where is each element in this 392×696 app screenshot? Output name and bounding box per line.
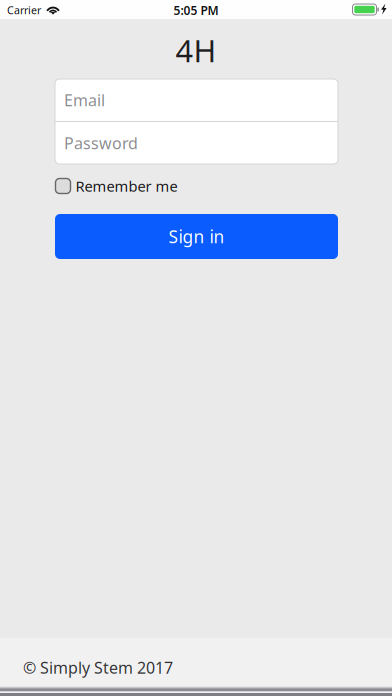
button[interactable]: Remember me bbox=[55, 175, 338, 197]
staticText: 5:05 PM bbox=[173, 2, 218, 18]
staticText: 4H bbox=[175, 30, 216, 71]
staticText: © Simply Stem 2017 bbox=[23, 657, 173, 678]
staticText: Password bbox=[64, 132, 138, 154]
staticText: Carrier bbox=[7, 3, 41, 17]
staticText: Sign in bbox=[168, 225, 224, 248]
staticText: Remember me bbox=[75, 176, 177, 196]
button[interactable]: Password bbox=[55, 122, 338, 164]
button[interactable]: Sign in bbox=[55, 214, 338, 259]
button[interactable]: Email bbox=[55, 79, 338, 121]
staticText: Email bbox=[64, 89, 105, 111]
